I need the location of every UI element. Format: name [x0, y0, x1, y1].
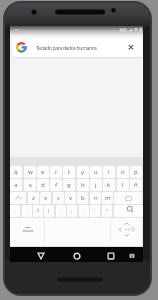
staticText: ": [106, 208, 108, 214]
button[interactable]: [126, 42, 136, 52]
staticText: x: [44, 194, 48, 202]
button[interactable]: :: [56, 205, 66, 217]
button[interactable]: q: [10, 166, 22, 178]
staticText: v: [69, 194, 73, 202]
button[interactable]: j: [90, 179, 102, 191]
button[interactable]: f: [50, 179, 62, 191]
button[interactable]: [70, 249, 84, 263]
staticText: ?: [37, 208, 39, 214]
staticText: q: [14, 168, 18, 176]
button[interactable]: a: [10, 179, 22, 191]
button[interactable]: t: [63, 166, 75, 178]
button[interactable]: .: [22, 205, 32, 217]
staticText: ': [94, 208, 96, 214]
staticText: n: [94, 194, 98, 202]
button[interactable]: [114, 205, 143, 217]
button[interactable]: y: [77, 166, 89, 178]
staticText: g: [67, 181, 71, 189]
staticText: d: [41, 181, 45, 189]
button[interactable]: v: [65, 192, 76, 204]
button[interactable]: u: [90, 166, 102, 178]
button[interactable]: [13, 38, 142, 57]
button[interactable]: !: [44, 205, 54, 217]
button[interactable]: b: [77, 192, 88, 204]
staticText: j: [95, 181, 97, 189]
button[interactable]: [10, 218, 142, 246]
button[interactable]: g: [63, 179, 75, 191]
button[interactable]: w: [24, 166, 36, 178]
staticText: z: [32, 194, 35, 202]
staticText: w: [28, 168, 33, 176]
staticText: h: [81, 181, 85, 189]
staticText: :: [60, 208, 62, 214]
button[interactable]: s: [24, 179, 36, 191]
staticText: Teclado para dedos humanos: [36, 44, 97, 51]
staticText: u: [94, 168, 98, 176]
button[interactable]: [104, 249, 118, 263]
staticText: e: [41, 168, 45, 176]
staticText: i: [108, 168, 110, 176]
button[interactable]: p: [130, 166, 142, 178]
button[interactable]: m: [102, 192, 113, 204]
staticText: k: [107, 181, 111, 189]
staticText: .: [26, 208, 28, 214]
staticText: ñ: [134, 181, 138, 189]
button[interactable]: ": [102, 205, 112, 217]
button[interactable]: [114, 192, 142, 204]
staticText: y: [81, 168, 85, 176]
staticText: -: [83, 208, 85, 214]
button[interactable]: k: [103, 179, 115, 191]
button[interactable]: -: [79, 205, 89, 217]
staticText: r: [55, 168, 58, 176]
button[interactable]: e: [37, 166, 49, 178]
staticText: b: [81, 194, 85, 202]
staticText: c: [57, 194, 60, 202]
staticText: m: [105, 194, 111, 202]
button[interactable]: x: [40, 192, 51, 204]
button[interactable]: o: [117, 166, 129, 178]
button[interactable]: ;: [67, 205, 77, 217]
staticText: ,: [14, 208, 16, 214]
button[interactable]: n: [90, 192, 101, 204]
staticText: p: [134, 168, 138, 176]
button[interactable]: l: [117, 179, 129, 191]
staticText: l: [122, 181, 124, 189]
staticText: t: [68, 168, 71, 176]
button[interactable]: ñ: [130, 179, 142, 191]
button[interactable]: ,: [10, 205, 20, 217]
button[interactable]: [10, 192, 26, 204]
button[interactable]: ': [90, 205, 100, 217]
staticText: ;: [71, 208, 73, 214]
button[interactable]: [127, 249, 138, 261]
staticText: !: [48, 208, 50, 214]
button[interactable]: z: [28, 192, 39, 204]
staticText: s: [29, 181, 32, 189]
staticText: o: [121, 168, 125, 176]
button[interactable]: [34, 249, 48, 263]
button[interactable]: h: [77, 179, 89, 191]
staticText: a: [14, 181, 18, 189]
button[interactable]: d: [37, 179, 49, 191]
button[interactable]: ?: [33, 205, 43, 217]
button[interactable]: r: [50, 166, 62, 178]
staticText: f: [55, 181, 58, 189]
button[interactable]: c: [53, 192, 64, 204]
button[interactable]: i: [103, 166, 115, 178]
